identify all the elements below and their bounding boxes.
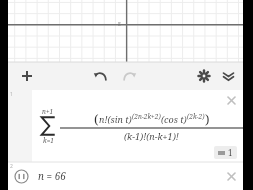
staticText: (k−1)!(n−k+1)! (124, 130, 179, 142)
staticText: n = 66 (38, 169, 66, 183)
staticText: 1 (10, 91, 13, 98)
button[interactable]: Delete expression (223, 92, 239, 108)
staticText: 2 (10, 163, 13, 170)
staticText: k=1 (43, 136, 54, 145)
button[interactable]: Pause animation (14, 169, 29, 184)
button[interactable]: Redo (118, 64, 142, 88)
button[interactable]: Undo (88, 64, 112, 88)
staticText: ( (94, 110, 99, 128)
staticText: (2n−2k+2) (132, 112, 161, 121)
staticText: -5 (116, 20, 122, 28)
button[interactable]: Collapse (217, 65, 239, 87)
staticText: 1 (228, 147, 233, 158)
staticText: (2k−2) (187, 112, 205, 121)
button[interactable]: Add expression (16, 65, 38, 87)
button[interactable]: 1 (214, 146, 237, 159)
staticText: n+1 (42, 107, 54, 116)
staticText: n!(sin t) (99, 113, 132, 125)
button[interactable]: Settings (193, 65, 215, 87)
staticText: (cos t) (161, 113, 187, 125)
staticText: ) (205, 110, 210, 128)
button[interactable]: Delete slider (223, 168, 239, 184)
